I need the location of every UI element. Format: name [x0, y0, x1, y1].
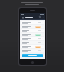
- button[interactable]: Open item: [21, 21, 44, 24]
- button[interactable]: Open item: [21, 41, 44, 44]
- button[interactable]: Open item: [21, 45, 44, 48]
- button[interactable]: Open item: [21, 33, 44, 36]
- button[interactable]: Open item: [21, 49, 44, 52]
- button[interactable]: Open item: [21, 37, 44, 40]
- button[interactable]: [35, 46, 41, 48]
- button[interactable]: [35, 34, 41, 36]
- button[interactable]: [35, 26, 41, 28]
- button[interactable]: Menu: [20, 15, 45, 19]
- button[interactable]: Open item: [21, 25, 44, 28]
- button[interactable]: More options: [42, 16, 44, 18]
- button[interactable]: [22, 54, 43, 57]
- button[interactable]: Open item: [21, 29, 44, 32]
- button[interactable]: Menu: [21, 16, 24, 19]
